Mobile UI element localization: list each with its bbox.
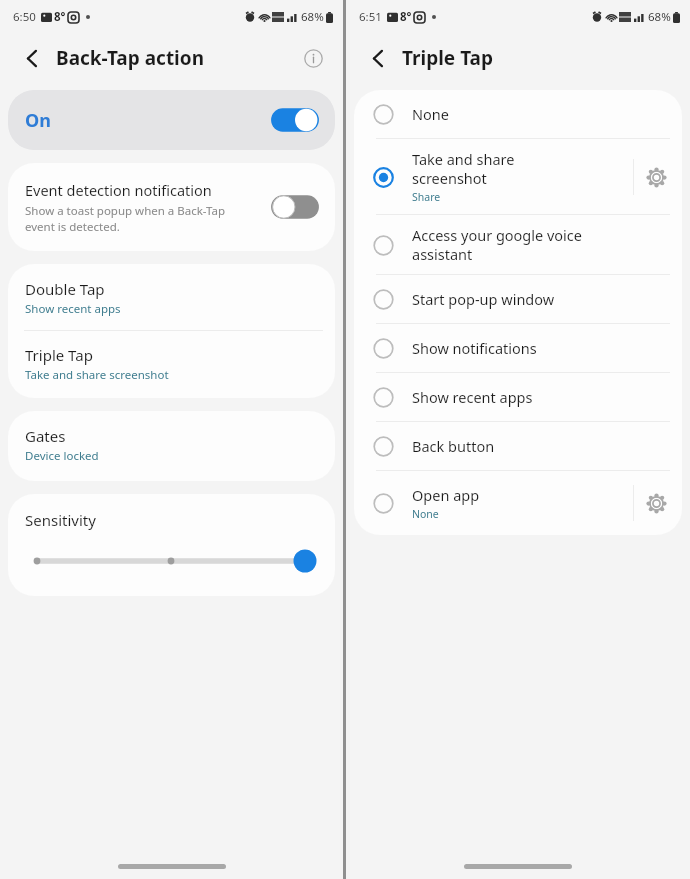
staticText: 8° bbox=[54, 9, 66, 25]
staticText: Take and share screenshot bbox=[412, 149, 515, 188]
button[interactable]: Gates bbox=[8, 411, 335, 481]
staticText: 8° bbox=[400, 9, 412, 25]
button[interactable]: Event detection notification bbox=[8, 163, 335, 251]
staticText: Take and share screenshot bbox=[25, 367, 169, 383]
staticText: Show recent apps bbox=[412, 387, 533, 407]
staticText: Share bbox=[412, 190, 441, 204]
staticText: Event detection notification bbox=[25, 180, 212, 200]
staticText: 68% bbox=[648, 9, 671, 25]
button[interactable]: Information bbox=[295, 40, 331, 76]
staticText: None bbox=[412, 507, 439, 521]
staticText: Back button bbox=[412, 436, 495, 456]
button[interactable]: Double Tap bbox=[8, 264, 335, 330]
staticText: Triple Tap bbox=[402, 45, 493, 71]
staticText: On bbox=[25, 108, 51, 133]
staticText: Show recent apps bbox=[25, 301, 121, 317]
button[interactable]: Settings bbox=[634, 481, 678, 525]
button[interactable]: Triple Tap bbox=[8, 331, 335, 398]
button[interactable]: Show recent apps bbox=[354, 373, 682, 421]
staticText: 6:50 bbox=[13, 9, 36, 25]
button[interactable]: Open app bbox=[354, 471, 682, 535]
staticText: Sensitivity bbox=[25, 510, 96, 530]
button[interactable]: Off bbox=[269, 192, 321, 222]
button[interactable] bbox=[361, 424, 405, 468]
button[interactable] bbox=[361, 375, 405, 419]
staticText: Show notifications bbox=[412, 338, 537, 358]
button[interactable]: Sensitivity slider bbox=[8, 548, 335, 574]
staticText: Open app bbox=[412, 485, 480, 505]
staticText: Access your google voice assistant bbox=[412, 225, 582, 264]
button[interactable]: Show notifications bbox=[354, 324, 682, 372]
button[interactable] bbox=[361, 326, 405, 370]
staticText: 6:51 bbox=[359, 9, 382, 25]
staticText: Start pop-up window bbox=[412, 289, 555, 309]
staticText: Double Tap bbox=[25, 279, 105, 299]
button[interactable]: Access your google voice assistant bbox=[354, 215, 682, 274]
staticText: Gates bbox=[25, 426, 66, 446]
button[interactable] bbox=[361, 155, 405, 199]
button[interactable] bbox=[361, 92, 405, 136]
button[interactable]: None bbox=[354, 90, 682, 138]
button[interactable]: On bbox=[269, 105, 321, 135]
button[interactable]: Back bbox=[10, 36, 54, 80]
staticText: Device locked bbox=[25, 448, 99, 464]
button[interactable]: Back button bbox=[354, 422, 682, 470]
button[interactable]: Settings bbox=[634, 155, 678, 199]
button[interactable] bbox=[361, 223, 405, 267]
staticText: Show a toast popup when a Back-Tap event… bbox=[25, 203, 226, 234]
button[interactable] bbox=[361, 481, 405, 525]
button[interactable]: Start pop-up window bbox=[354, 275, 682, 323]
staticText: 68% bbox=[301, 9, 324, 25]
button[interactable]: Take and share screenshot bbox=[354, 139, 682, 214]
staticText: Triple Tap bbox=[25, 345, 93, 365]
button[interactable]: On bbox=[8, 90, 335, 150]
button[interactable] bbox=[361, 277, 405, 321]
staticText: Back-Tap action bbox=[56, 45, 205, 71]
button[interactable]: Back bbox=[356, 36, 400, 80]
staticText: None bbox=[412, 104, 449, 124]
